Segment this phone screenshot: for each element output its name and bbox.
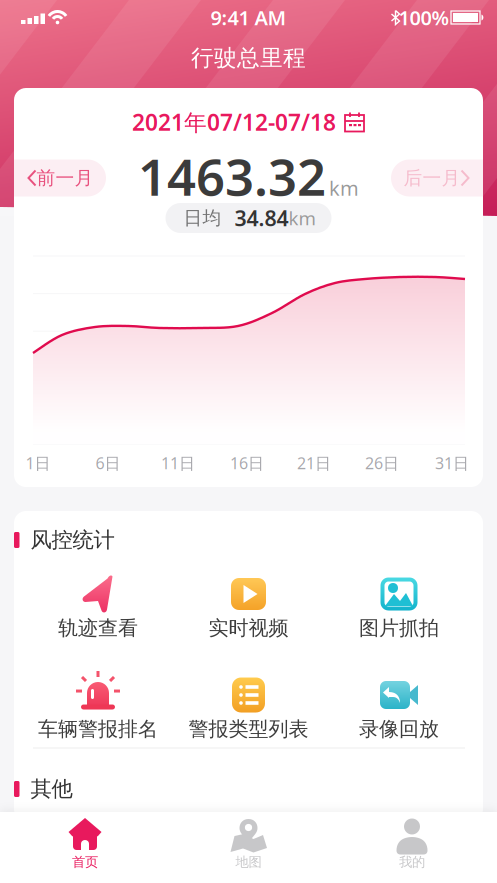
staticText: 实时视频: [208, 616, 288, 640]
staticText: 6日: [95, 452, 120, 474]
staticText: 11日: [161, 452, 195, 474]
button[interactable]: 图片抓拍: [339, 560, 459, 660]
button[interactable]: 录像回放: [339, 661, 459, 761]
staticText: 图片抓拍: [359, 616, 439, 640]
staticText: 1463.32: [138, 142, 326, 210]
staticText: 警报类型列表: [188, 717, 308, 741]
staticText: 轨迹查看: [58, 616, 138, 640]
staticText: 34.84: [234, 204, 288, 232]
staticText: 我的: [399, 854, 425, 870]
staticText: 行驶总里程: [191, 44, 306, 72]
button[interactable]: 地图: [188, 814, 308, 878]
button[interactable]: 车辆警报排名: [38, 661, 158, 761]
button[interactable]: 首页: [25, 814, 145, 878]
staticText: 后一月: [403, 166, 460, 189]
staticText: 21日: [297, 452, 331, 474]
button[interactable]: 前一月: [14, 159, 106, 196]
button[interactable]: 轨迹查看: [38, 560, 158, 660]
staticText: 31日: [435, 452, 469, 474]
staticText: 前一月: [36, 166, 93, 189]
staticText: 地图: [235, 854, 261, 870]
staticText: 首页: [72, 854, 98, 870]
staticText: 9:41 AM: [210, 4, 286, 31]
staticText: 26日: [365, 452, 399, 474]
button[interactable]: 后一月: [391, 159, 483, 196]
staticText: 风控统计: [30, 527, 114, 553]
staticText: 100%: [398, 4, 449, 31]
staticText: 日均: [183, 206, 221, 229]
staticText: 16日: [230, 452, 264, 474]
staticText: 1日: [25, 452, 50, 474]
staticText: 2021年07/12-07/18: [132, 107, 336, 137]
staticText: km: [329, 175, 359, 201]
button[interactable]: 我的: [352, 814, 472, 878]
staticText: 录像回放: [359, 717, 439, 741]
staticText: 其他: [30, 776, 72, 802]
button[interactable]: 2021年07/12-07/18: [132, 107, 365, 137]
button[interactable]: 警报类型列表: [188, 661, 308, 761]
staticText: 车辆警报排名: [38, 717, 158, 741]
button[interactable]: 实时视频: [188, 560, 308, 660]
staticText: km: [288, 206, 315, 230]
